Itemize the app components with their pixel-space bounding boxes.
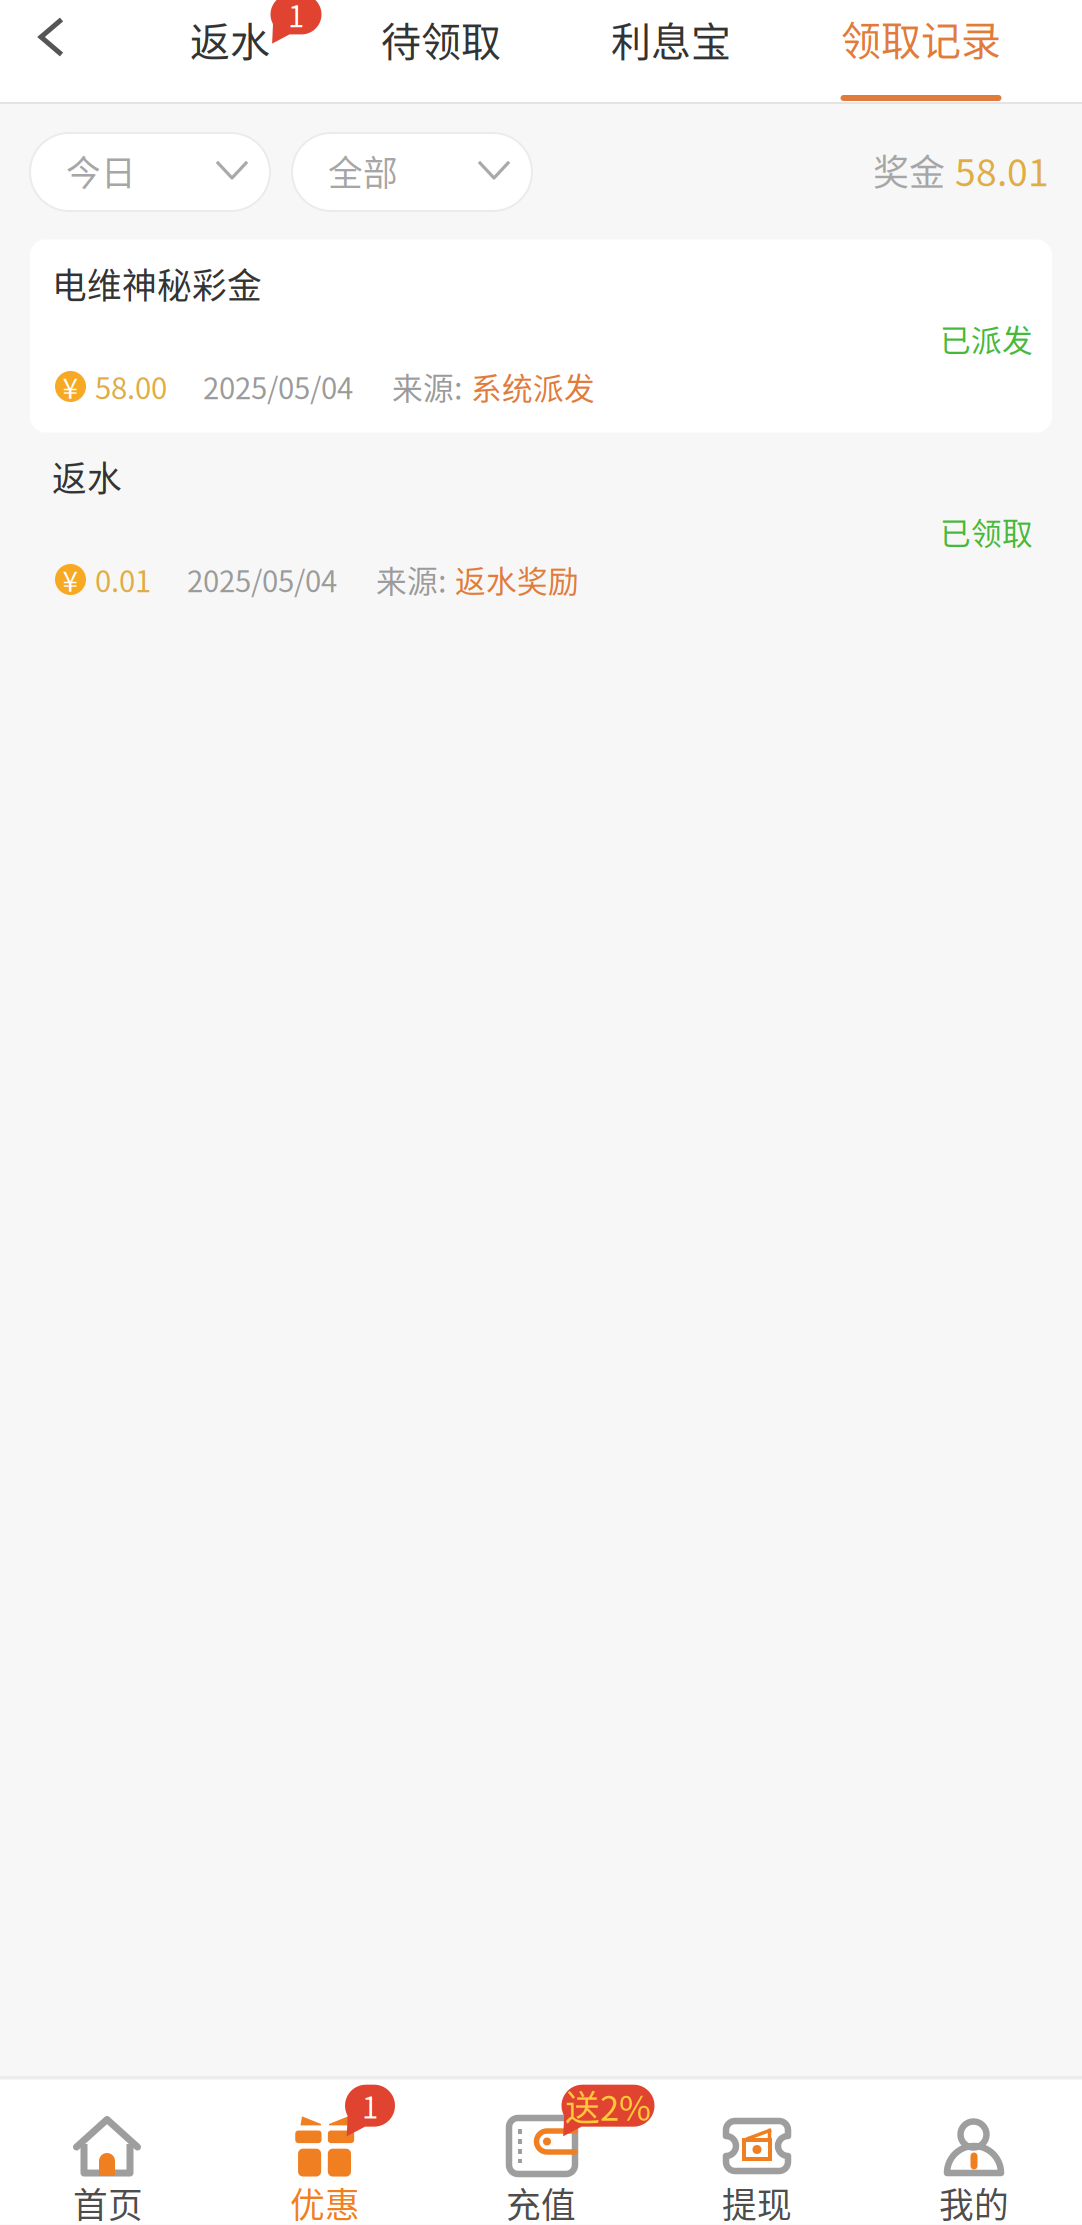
staticText: 提现 xyxy=(722,2178,792,2225)
staticText: 返水奖励 xyxy=(455,557,579,602)
button[interactable]: 提现 xyxy=(649,2079,865,2224)
staticText: ¥ xyxy=(62,366,78,407)
button[interactable]: Back xyxy=(0,0,106,89)
staticText: 领取记录 xyxy=(841,9,1001,67)
staticText: 系统派发 xyxy=(471,364,595,409)
button[interactable]: 优惠 xyxy=(217,2079,433,2224)
staticText: 全部 xyxy=(328,146,398,196)
staticText: 今日 xyxy=(66,146,136,196)
button[interactable]: 首页 xyxy=(0,2079,216,2224)
staticText: ¥ xyxy=(62,559,78,600)
staticText: 返水 xyxy=(52,451,122,502)
staticText: 已领取 xyxy=(940,509,1033,554)
button[interactable]: 利息宝 xyxy=(576,0,766,91)
staticText: 1 xyxy=(288,0,304,36)
staticText: 0.01 xyxy=(95,558,151,601)
staticText: 我的 xyxy=(939,2178,1009,2225)
staticText: 首页 xyxy=(73,2178,143,2225)
staticText: 2025/05/04 xyxy=(203,365,353,408)
staticText: 奖金 xyxy=(873,144,945,196)
staticText: 2025/05/04 xyxy=(187,558,337,601)
staticText: 充值 xyxy=(506,2178,576,2225)
staticText: 优惠 xyxy=(290,2178,360,2225)
staticText: 返水 xyxy=(190,10,270,68)
button[interactable]: 领取记录 xyxy=(806,0,1036,104)
staticText: 来源: xyxy=(376,557,447,602)
staticText: 送2% xyxy=(565,2081,651,2131)
button[interactable]: 今日 xyxy=(30,133,270,211)
button[interactable]: 返水 xyxy=(155,0,305,91)
staticText: 利息宝 xyxy=(611,10,731,68)
staticText: 电维神秘彩金 xyxy=(52,258,262,309)
staticText: 58.00 xyxy=(95,365,167,408)
staticText: 待领取 xyxy=(381,10,501,68)
button[interactable]: 我的 xyxy=(866,2079,1082,2224)
button[interactable]: 全部 xyxy=(292,133,532,211)
staticText: 58.01 xyxy=(955,143,1049,197)
staticText: 已派发 xyxy=(940,316,1033,361)
button[interactable]: 待领取 xyxy=(346,0,536,91)
staticText: 1 xyxy=(362,2084,378,2127)
staticText: 来源: xyxy=(392,364,463,409)
button[interactable]: 充值 xyxy=(433,2079,649,2224)
